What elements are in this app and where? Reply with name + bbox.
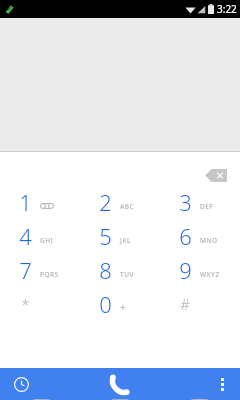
button[interactable]: Backspace xyxy=(198,162,234,188)
staticText: TUV xyxy=(120,270,134,279)
button[interactable]: * xyxy=(0,287,80,321)
button[interactable]: 8 xyxy=(80,253,160,287)
staticText: 0 xyxy=(99,289,112,319)
staticText: + xyxy=(120,300,126,314)
staticText: MNO xyxy=(200,236,218,245)
button[interactable]: 0 xyxy=(80,287,160,321)
staticText: 4 xyxy=(19,221,32,251)
staticText: PQRS xyxy=(40,270,59,279)
button[interactable]: More options xyxy=(210,368,234,400)
button[interactable]: 9 xyxy=(160,253,240,287)
staticText: # xyxy=(180,294,190,314)
staticText: 6 xyxy=(179,221,192,251)
button[interactable]: 3 xyxy=(160,185,240,219)
staticText: * xyxy=(21,294,30,314)
button[interactable]: # xyxy=(160,287,240,321)
staticText: 2 xyxy=(99,187,112,217)
staticText: WXYZ xyxy=(200,270,220,279)
button[interactable]: Recent calls xyxy=(6,369,36,399)
button[interactable]: 1 xyxy=(0,185,80,219)
staticText: 3:22 xyxy=(217,2,237,16)
staticText: 9 xyxy=(179,255,192,285)
staticText: 3 xyxy=(179,187,192,217)
button[interactable]: 7 xyxy=(0,253,80,287)
staticText: 7 xyxy=(19,255,32,285)
staticText: 1 xyxy=(19,187,32,217)
button[interactable]: 6 xyxy=(160,219,240,253)
button[interactable]: 5 xyxy=(80,219,160,253)
staticText: DEF xyxy=(200,202,214,211)
staticText: 8 xyxy=(99,255,112,285)
staticText: GHI xyxy=(40,236,54,245)
button[interactable]: 2 xyxy=(80,185,160,219)
staticText: ABC xyxy=(120,202,135,211)
button[interactable]: Call xyxy=(98,368,142,400)
staticText: JKL xyxy=(120,236,131,245)
button[interactable]: 4 xyxy=(0,219,80,253)
staticText: 5 xyxy=(99,221,112,251)
